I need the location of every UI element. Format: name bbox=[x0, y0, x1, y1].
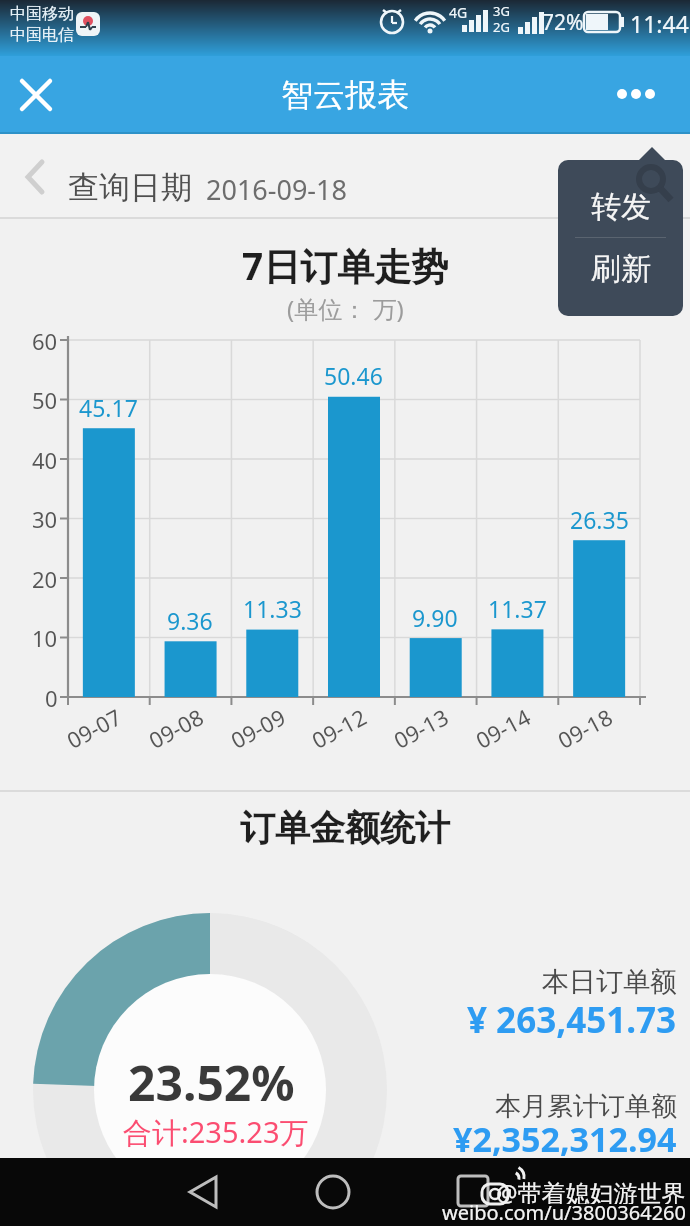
staticText: 20 bbox=[32, 564, 58, 592]
button[interactable] bbox=[608, 66, 680, 122]
staticText: 11.37 bbox=[488, 593, 547, 623]
staticText: 09-07 bbox=[61, 701, 127, 755]
button[interactable] bbox=[0, 134, 690, 218]
staticText: 09-09 bbox=[225, 701, 291, 755]
button[interactable]: 刷新 bbox=[558, 238, 683, 299]
staticText: 本月累计订单额 bbox=[495, 1090, 677, 1123]
staticText: 2016-09-18 bbox=[206, 171, 347, 208]
staticText: 09-13 bbox=[388, 701, 454, 755]
staticText: ¥2,352,312.94 bbox=[453, 1116, 677, 1160]
staticText: 09-14 bbox=[470, 701, 536, 755]
button[interactable]: 转发 bbox=[558, 176, 683, 237]
button[interactable] bbox=[280, 1158, 390, 1226]
staticText: 4G bbox=[449, 3, 468, 22]
staticText: 09-12 bbox=[306, 701, 372, 755]
staticText: 7日订单走势 bbox=[242, 240, 449, 286]
staticText: 查询日期 bbox=[68, 168, 192, 207]
staticText: 11.33 bbox=[243, 593, 302, 623]
staticText: 50 bbox=[32, 385, 58, 413]
staticText: ¥ 263,451.73 bbox=[467, 996, 677, 1040]
staticText: 中国移动 bbox=[10, 4, 74, 24]
staticText: 23.52% bbox=[128, 1050, 295, 1110]
staticText: 11:44 bbox=[630, 8, 689, 36]
staticText: 订单金额统计 bbox=[240, 806, 450, 850]
staticText: (单位： 万) bbox=[287, 292, 404, 324]
button[interactable] bbox=[12, 66, 64, 122]
staticText: 智云报表 bbox=[281, 75, 409, 115]
staticText: 50.46 bbox=[324, 360, 383, 390]
staticText: 中国电信 bbox=[10, 25, 74, 45]
staticText: 30 bbox=[32, 504, 58, 532]
staticText: 刷新 bbox=[591, 250, 651, 288]
staticText: 45.17 bbox=[79, 392, 138, 422]
staticText: 合计:235.23万 bbox=[123, 1112, 309, 1148]
staticText: 3G bbox=[493, 2, 510, 20]
staticText: 10 bbox=[32, 623, 58, 651]
staticText: 9.36 bbox=[167, 605, 213, 635]
staticText: weibo.com/u/3800364260 bbox=[442, 1199, 686, 1225]
staticText: @带着媳妇游世界 bbox=[496, 1176, 686, 1204]
staticText: 09-18 bbox=[552, 701, 618, 755]
button[interactable] bbox=[420, 1158, 530, 1226]
staticText: 60 bbox=[32, 326, 58, 354]
staticText: 72% bbox=[542, 8, 584, 36]
staticText: 转发 bbox=[591, 188, 651, 226]
staticText: 40 bbox=[32, 445, 58, 473]
staticText: 2G bbox=[493, 18, 510, 36]
button[interactable] bbox=[150, 1158, 260, 1226]
staticText: 26.35 bbox=[570, 504, 629, 534]
staticText: 09-08 bbox=[143, 701, 209, 755]
staticText: 0 bbox=[45, 683, 58, 711]
staticText: 本日订单额 bbox=[542, 965, 677, 999]
staticText: 9.90 bbox=[412, 602, 458, 632]
